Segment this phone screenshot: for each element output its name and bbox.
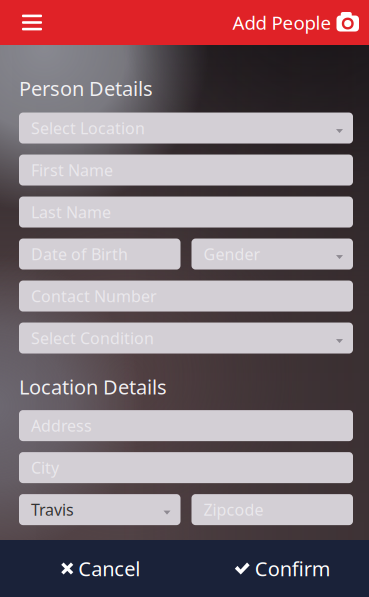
staticText: Gender [203,243,260,265]
staticText: Contact Number [31,285,157,307]
staticText: Person Details [19,75,153,102]
staticText: First Name [31,159,113,181]
staticText: Confirm [255,555,331,582]
staticText: City [31,457,59,478]
staticText: Date of Birth [31,243,128,265]
staticText: Zipcode [203,499,263,520]
staticText: Address [31,415,92,436]
staticText: Select Location [31,117,145,139]
staticText: Last Name [31,201,111,223]
staticText: Cancel [78,555,140,582]
staticText: Travis [31,499,74,520]
staticText: Select Condition [31,327,154,349]
button[interactable]: Add People [232,10,369,35]
button[interactable]: Confirm [184,540,369,597]
button[interactable]: Menu [0,1,46,43]
staticText: Location Details [19,374,167,400]
button[interactable]: Cancel [0,540,184,597]
staticText: Add People [232,10,331,35]
